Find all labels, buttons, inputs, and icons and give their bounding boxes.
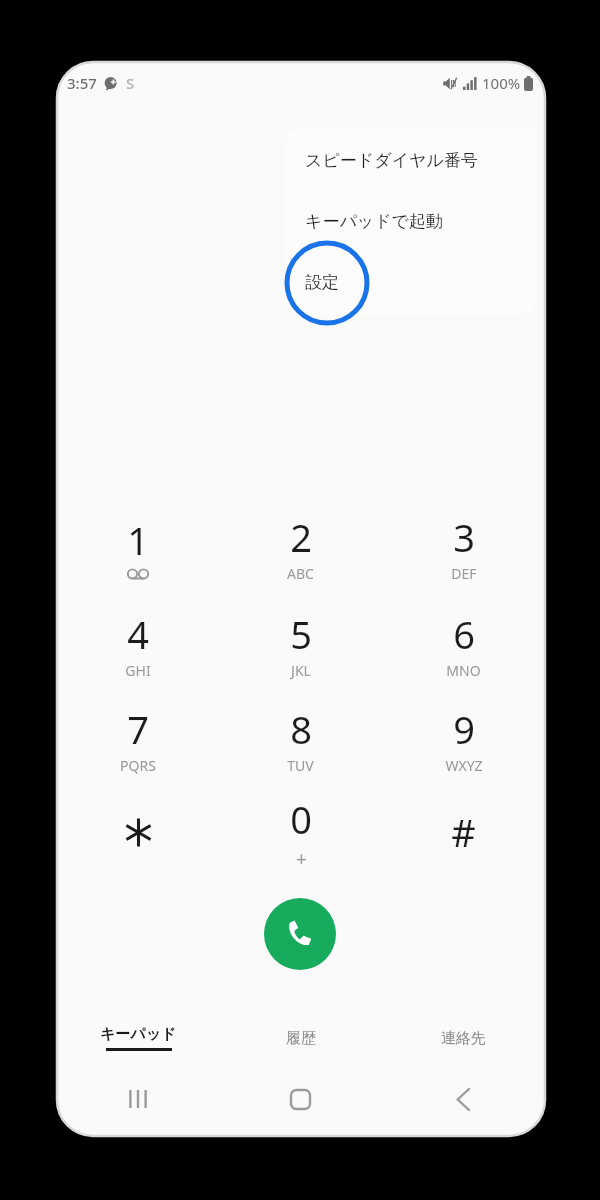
staticText: PQRS	[120, 756, 156, 775]
staticText: 5	[290, 608, 312, 660]
button[interactable]: Call	[264, 898, 336, 970]
button[interactable]: 0	[219, 785, 382, 879]
staticText: 8	[290, 703, 312, 755]
button[interactable]: 1	[57, 500, 219, 594]
button[interactable]: 設定	[285, 252, 535, 313]
staticText: 3:57	[67, 73, 97, 93]
staticText: WXYZ	[445, 756, 483, 775]
staticText: 100%	[482, 73, 521, 93]
staticText: ABC	[287, 564, 314, 583]
staticText: TUV	[287, 756, 314, 775]
button[interactable]: Back	[382, 1072, 545, 1126]
button[interactable]: 8	[219, 692, 382, 786]
staticText: S	[126, 73, 135, 93]
button[interactable]: 9	[382, 692, 545, 786]
staticText: 4	[127, 608, 149, 660]
button[interactable]: 5	[219, 597, 382, 691]
staticText: 6	[453, 608, 475, 660]
staticText: キーパッド	[100, 1025, 177, 1044]
staticText: JKL	[291, 661, 311, 680]
button[interactable]: Recents	[57, 1072, 219, 1126]
staticText: 2	[290, 511, 312, 563]
staticText: 3	[453, 511, 475, 563]
button[interactable]: 4	[57, 597, 219, 691]
button[interactable]: 2	[219, 500, 382, 594]
button[interactable]: 履歴	[219, 1012, 382, 1064]
staticText: スピードダイヤル番号	[305, 150, 478, 171]
staticText: 7	[127, 703, 149, 755]
staticText: 連絡先	[441, 1029, 486, 1048]
button[interactable]: キーパッドで起動	[285, 191, 535, 252]
staticText: キーパッドで起動	[305, 211, 443, 232]
button[interactable]: スピードダイヤル番号	[285, 130, 535, 191]
button[interactable]: キーパッド	[57, 1012, 219, 1064]
button[interactable]: 7	[57, 692, 219, 786]
staticText: GHI	[125, 661, 151, 680]
button[interactable]	[57, 785, 219, 879]
button[interactable]: 3	[382, 500, 545, 594]
staticText: 0	[290, 793, 312, 845]
staticText: DEF	[451, 564, 477, 583]
staticText: #	[451, 806, 476, 858]
button[interactable]: Home	[219, 1072, 382, 1126]
button[interactable]: 6	[382, 597, 545, 691]
button[interactable]: 連絡先	[382, 1012, 545, 1064]
staticText: 1	[127, 514, 149, 566]
staticText: 9	[453, 703, 475, 755]
button[interactable]: #	[382, 785, 545, 879]
staticText: 履歴	[286, 1029, 316, 1048]
staticText: MNO	[446, 661, 481, 680]
staticText: 設定	[305, 272, 339, 293]
staticText: +	[296, 846, 307, 872]
